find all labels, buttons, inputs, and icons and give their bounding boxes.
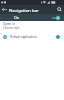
button[interactable]: Default application <box>0 33 64 41</box>
button[interactable]: Search <box>55 5 64 14</box>
staticText: Navigation bar <box>9 7 39 13</box>
staticText: Open in <box>3 22 15 26</box>
staticText: On <box>14 15 20 20</box>
button[interactable]: Back <box>0 5 9 14</box>
staticText: Choose style <box>3 26 20 30</box>
button[interactable]: On <box>0 14 64 21</box>
staticText: Default application <box>10 35 37 39</box>
